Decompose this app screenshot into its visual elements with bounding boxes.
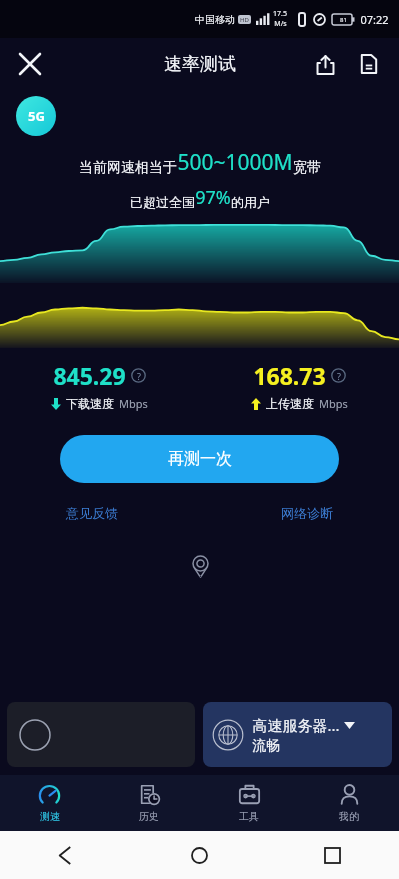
button[interactable] — [7, 702, 195, 767]
staticText: 网络诊断 — [281, 505, 333, 521]
button[interactable]: 845.29 — [0, 360, 199, 411]
button[interactable]: Back — [0, 831, 133, 879]
staticText: 的用户 — [231, 194, 270, 210]
staticText: 845.29 — [53, 360, 126, 391]
staticText: 当前网速相当于 — [79, 159, 177, 177]
button[interactable]: 网络诊断 — [275, 499, 339, 527]
button[interactable]: 高速服务器... — [203, 702, 392, 767]
staticText: M/s — [274, 19, 287, 29]
button[interactable]: 168.73 — [199, 360, 399, 411]
button[interactable]: 历史 — [99, 775, 199, 831]
staticText: 工具 — [239, 810, 259, 823]
staticText: 5G — [28, 107, 45, 125]
staticText: 中国移动 — [195, 13, 235, 26]
staticText: 168.73 — [253, 360, 326, 391]
staticText: 再测一次 — [168, 449, 232, 469]
staticText: Mbps — [319, 396, 348, 411]
button[interactable]: 我的 — [299, 775, 399, 831]
staticText: 速率测试 — [164, 53, 236, 76]
staticText: 500~1000M — [177, 148, 293, 177]
button[interactable]: Home — [133, 831, 266, 879]
staticText: 高速服务器... — [252, 715, 340, 735]
staticText: 测速 — [40, 810, 60, 823]
staticText: Mbps — [119, 396, 148, 411]
button[interactable]: 再测一次 — [60, 435, 339, 483]
button[interactable]: 意见反馈 — [60, 499, 124, 527]
staticText: 历史 — [139, 810, 159, 823]
button[interactable]: Recents — [266, 831, 399, 879]
staticText: 宽带 — [293, 159, 321, 177]
staticText: HD — [240, 16, 249, 24]
button[interactable]: Share — [303, 42, 347, 86]
staticText: 下载速度 — [66, 396, 114, 411]
button[interactable]: 测速 — [0, 775, 99, 831]
staticText: ? — [337, 370, 341, 382]
staticText: 上传速度 — [266, 396, 314, 411]
staticText: 17.5 — [273, 9, 287, 19]
staticText: ? — [137, 370, 141, 382]
button[interactable]: 工具 — [199, 775, 299, 831]
staticText: 已超过全国 — [130, 194, 195, 210]
staticText: 81 — [340, 16, 347, 24]
button[interactable]: Report — [347, 42, 391, 86]
staticText: 意见反馈 — [66, 505, 118, 521]
staticText: 流畅 — [252, 737, 280, 755]
button[interactable]: Close — [8, 42, 52, 86]
staticText: 我的 — [339, 810, 359, 823]
staticText: 07:22 — [360, 12, 389, 27]
button[interactable]: Location — [183, 549, 217, 583]
staticText: 97% — [195, 185, 231, 210]
